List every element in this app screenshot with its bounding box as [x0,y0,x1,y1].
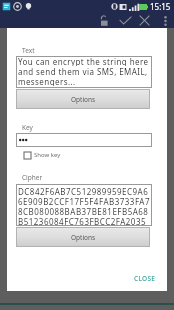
staticText: Options [71,233,96,242]
button[interactable]: Show key [22,150,63,160]
staticText: Cipher [22,173,43,182]
button[interactable]: Options [16,89,150,109]
staticText: Show key [34,151,61,159]
staticText: and send them via SMS, EMAIL, [18,66,148,76]
button[interactable]: Close [134,13,154,28]
staticText: 15:15 [150,1,171,12]
staticText: DC842F6AB7C512989959EC9A6 [18,186,149,196]
staticText: Key [22,123,33,132]
staticText: Options [71,95,96,104]
button[interactable]: CLOSE [129,269,161,288]
staticText: CLOSE [134,274,156,283]
button[interactable]: You can encrypt the string here [16,56,152,88]
staticText: You can encrypt the string here [18,56,149,66]
button[interactable]: More options [157,13,173,28]
staticText: B51236084FC763FBCC2FA2035 [18,216,147,225]
staticText: messengers... [18,76,76,86]
button[interactable]: Options [16,227,150,247]
button[interactable]: Unlock [95,13,114,28]
staticText: 6E909B2CCF17F5F4FAB3733FA7 [18,196,151,206]
staticText: Text [22,46,35,55]
staticText: 8CB080088BAB37BE81EFB5A68 [18,206,149,216]
button[interactable]: Confirm [115,13,135,28]
button[interactable]: DC842F6AB7C512989959EC9A6 [16,184,152,226]
button[interactable] [16,133,152,147]
